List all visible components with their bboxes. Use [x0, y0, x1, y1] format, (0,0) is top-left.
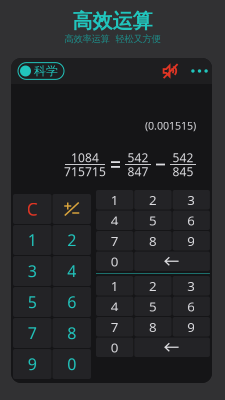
button[interactable]: C [13, 194, 51, 224]
button[interactable]: 3 [173, 190, 210, 209]
staticText: 高效运算 [72, 9, 152, 33]
button[interactable]: 2 [134, 276, 172, 295]
staticText: 8 [149, 232, 157, 250]
staticText: 9 [187, 318, 195, 336]
button[interactable]: 5 [134, 296, 172, 316]
button[interactable]: 6 [52, 287, 91, 317]
staticText: 6 [187, 297, 195, 315]
button[interactable]: 3 [173, 276, 210, 295]
staticText: (0.001515) [145, 118, 196, 133]
button[interactable]: Backspace [134, 251, 210, 271]
staticText: 6 [67, 291, 76, 313]
staticText: 0 [111, 252, 119, 270]
staticText: 5 [28, 291, 37, 313]
staticText: 3 [187, 191, 195, 209]
button[interactable]: 3 [13, 256, 51, 286]
staticText: 2 [67, 229, 76, 251]
staticText: 6 [187, 211, 195, 229]
button[interactable]: 9 [13, 349, 51, 379]
staticText: 542 [172, 149, 193, 165]
button[interactable]: 4 [96, 210, 133, 230]
button[interactable]: 5 [13, 287, 51, 317]
staticText: 3 [187, 277, 195, 295]
staticText: 5 [149, 297, 157, 315]
staticText: 845 [172, 163, 193, 179]
button[interactable]: 2 [134, 190, 172, 209]
staticText: 3 [28, 260, 37, 282]
staticText: 715715 [64, 163, 106, 179]
staticText: 5 [149, 211, 157, 229]
staticText: 847 [127, 163, 148, 179]
button[interactable]: 0 [96, 337, 133, 357]
staticText: 科学 [34, 64, 58, 78]
staticText: 4 [111, 297, 119, 315]
button[interactable]: 7 [96, 231, 133, 250]
staticText: 0 [67, 353, 76, 375]
staticText: 1084 [71, 149, 99, 165]
staticText: 7 [28, 322, 37, 344]
button[interactable]: 0 [52, 349, 91, 379]
button[interactable]: 6 [173, 210, 210, 230]
button[interactable]: 7 [96, 317, 133, 336]
staticText: 1 [111, 277, 119, 295]
button[interactable]: 8 [134, 317, 172, 336]
button[interactable]: 4 [96, 296, 133, 316]
staticText: 2 [149, 277, 157, 295]
button[interactable]: 2 [52, 225, 91, 255]
button[interactable]: 科学 [18, 63, 64, 79]
button[interactable]: More [191, 63, 208, 79]
staticText: 8 [67, 322, 76, 344]
button[interactable]: 9 [173, 231, 210, 250]
button[interactable]: Mute [162, 62, 179, 79]
button[interactable]: 1 [13, 225, 51, 255]
button[interactable]: 1 [96, 190, 133, 209]
button[interactable]: 0 [96, 251, 133, 271]
button[interactable]: 7 [13, 318, 51, 348]
button[interactable]: 8 [134, 231, 172, 250]
staticText: 8 [149, 318, 157, 336]
staticText: 高效率运算 轻松又方便 [64, 33, 160, 45]
staticText: 4 [111, 211, 119, 229]
button[interactable]: 4 [52, 256, 91, 286]
staticText: 1 [28, 229, 37, 251]
staticText: 9 [28, 353, 37, 375]
staticText: 542 [127, 149, 148, 165]
button[interactable]: 8 [52, 318, 91, 348]
button[interactable]: Plus minus [52, 194, 91, 224]
staticText: 4 [67, 260, 76, 282]
staticText: C [27, 197, 38, 220]
staticText: 9 [187, 232, 195, 250]
staticText: 7 [111, 318, 119, 336]
staticText: 2 [149, 191, 157, 209]
button[interactable]: 6 [173, 296, 210, 316]
button[interactable]: Backspace [134, 337, 210, 357]
staticText: 7 [111, 232, 119, 250]
button[interactable]: 9 [173, 317, 210, 336]
staticText: 1 [111, 191, 119, 209]
staticText: 0 [111, 338, 119, 356]
button[interactable]: 5 [134, 210, 172, 230]
button[interactable]: 1 [96, 276, 133, 295]
